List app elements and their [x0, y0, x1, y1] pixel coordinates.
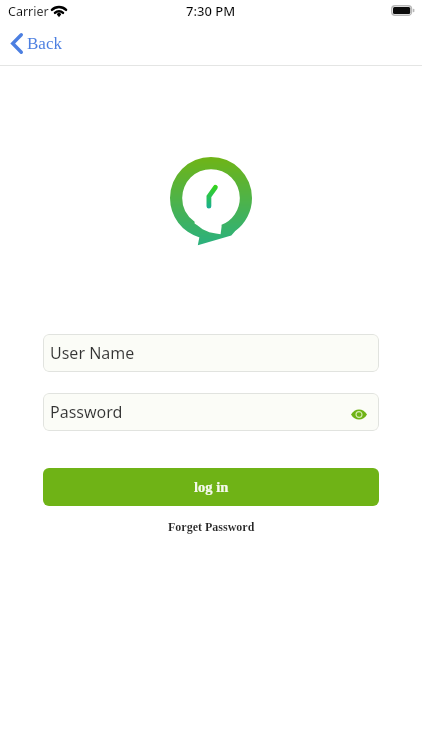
staticText: Back — [27, 34, 62, 53]
staticText: Forget Password — [168, 520, 255, 533]
button[interactable]: Back — [8, 33, 62, 54]
staticText: log in — [194, 479, 229, 495]
button[interactable]: Forget Password — [164, 518, 259, 535]
button[interactable]: User Name — [43, 334, 379, 372]
button[interactable]: Password — [43, 393, 379, 431]
staticText: Password — [50, 401, 123, 423]
button[interactable]: Show password — [349, 404, 369, 424]
button[interactable]: log in — [43, 468, 379, 506]
staticText: Carrier — [8, 3, 49, 20]
staticText: 7:30 PM — [186, 2, 236, 20]
staticText: User Name — [50, 342, 135, 364]
